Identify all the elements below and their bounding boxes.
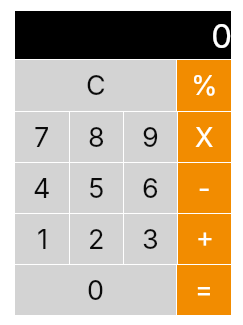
button[interactable]: 2 xyxy=(70,214,123,264)
staticText: 8 xyxy=(88,121,105,154)
staticText: 7 xyxy=(34,121,50,154)
staticText: 9 xyxy=(142,121,159,154)
button[interactable]: 0 xyxy=(15,265,176,315)
staticText: = xyxy=(195,273,213,306)
staticText: 5 xyxy=(88,172,105,205)
staticText: 0 xyxy=(87,274,105,307)
button[interactable]: 9 xyxy=(124,112,177,162)
staticText: X xyxy=(195,121,214,154)
staticText: % xyxy=(191,69,218,102)
button[interactable]: 4 xyxy=(15,163,69,213)
button[interactable]: Subtract xyxy=(178,163,231,213)
button[interactable]: 3 xyxy=(124,214,177,264)
button[interactable]: 8 xyxy=(70,112,123,162)
button[interactable]: 1 xyxy=(15,214,69,264)
button[interactable]: Multiply xyxy=(178,112,231,162)
button[interactable]: 5 xyxy=(70,163,123,213)
staticText: 3 xyxy=(142,223,159,256)
staticText: 6 xyxy=(142,172,159,205)
button[interactable]: 7 xyxy=(15,112,69,162)
staticText: 0 xyxy=(211,16,232,56)
staticText: 4 xyxy=(33,172,51,205)
staticText: + xyxy=(196,221,214,254)
staticText: C xyxy=(86,69,106,102)
staticText: 2 xyxy=(88,223,105,256)
button[interactable]: Equals xyxy=(177,265,231,315)
button[interactable]: Clear xyxy=(15,60,176,111)
staticText: - xyxy=(198,172,211,205)
button[interactable]: 6 xyxy=(124,163,177,213)
staticText: 1 xyxy=(37,223,48,256)
button[interactable]: Percent xyxy=(177,60,231,111)
button[interactable]: Add xyxy=(178,214,231,264)
